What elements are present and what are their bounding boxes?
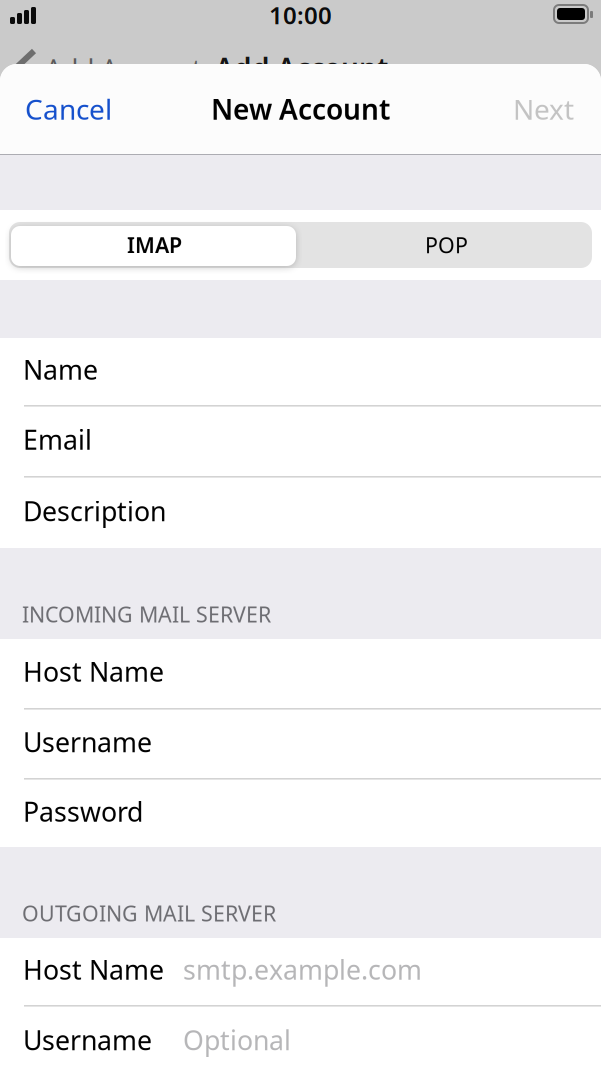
staticText: Host Name [23, 654, 164, 689]
staticText: 10:00 [269, 0, 332, 31]
button[interactable]: Username [0, 1007, 601, 1070]
button[interactable]: IMAP [9, 222, 300, 268]
button[interactable]: Username [0, 710, 601, 778]
staticText: Host Name [23, 952, 164, 987]
button[interactable]: Next [474, 77, 574, 141]
button[interactable]: POP [301, 222, 592, 268]
staticText: Username [23, 724, 152, 760]
button[interactable]: Name [0, 338, 601, 405]
staticText: OUTGOING MAIL SERVER [22, 899, 276, 927]
staticText: Add Account [45, 51, 202, 87]
staticText: Next [513, 90, 574, 128]
staticText: Optional [183, 1022, 291, 1058]
staticText: Cancel [25, 90, 112, 128]
staticText: Password [23, 794, 143, 829]
staticText: INCOMING MAIL SERVER [22, 600, 271, 628]
staticText: Email [23, 422, 92, 457]
button[interactable]: Host Name [0, 938, 601, 1005]
button[interactable]: Email [0, 407, 601, 476]
staticText: POP [425, 231, 468, 259]
button[interactable]: Host Name [0, 639, 601, 708]
staticText: Add Account [215, 49, 388, 87]
staticText: Username [23, 1022, 152, 1058]
button[interactable]: Password [0, 780, 601, 847]
staticText: New Account [211, 90, 390, 128]
staticText: Description [23, 493, 166, 529]
button[interactable]: Cancel [25, 77, 145, 141]
staticText: IMAP [127, 231, 182, 259]
button[interactable]: Description [0, 478, 601, 548]
staticText: smtp.example.com [183, 952, 422, 987]
staticText: Name [23, 352, 98, 387]
